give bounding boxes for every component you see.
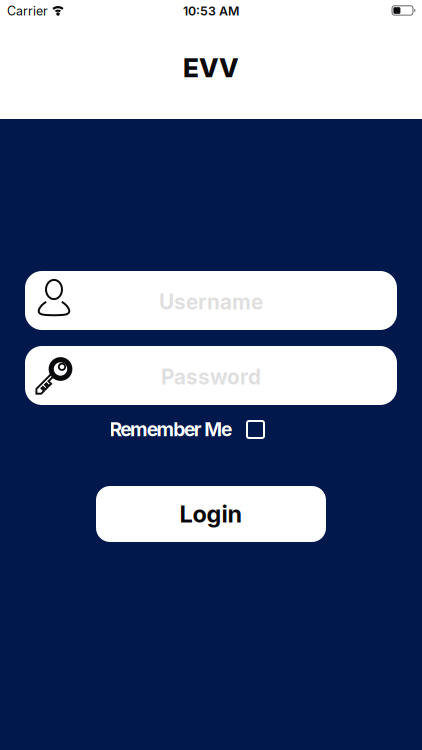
button[interactable]: Username: [25, 271, 397, 330]
button[interactable]: [246, 420, 265, 439]
staticText: Remember Me: [109, 418, 232, 441]
staticText: Username: [159, 289, 263, 314]
button[interactable]: Login: [96, 486, 326, 542]
staticText: EVV: [183, 52, 239, 83]
staticText: 10:53 AM: [183, 3, 239, 18]
staticText: Login: [179, 500, 242, 528]
button[interactable]: Password: [25, 346, 397, 405]
staticText: Password: [161, 364, 261, 389]
staticText: Carrier: [7, 3, 48, 18]
